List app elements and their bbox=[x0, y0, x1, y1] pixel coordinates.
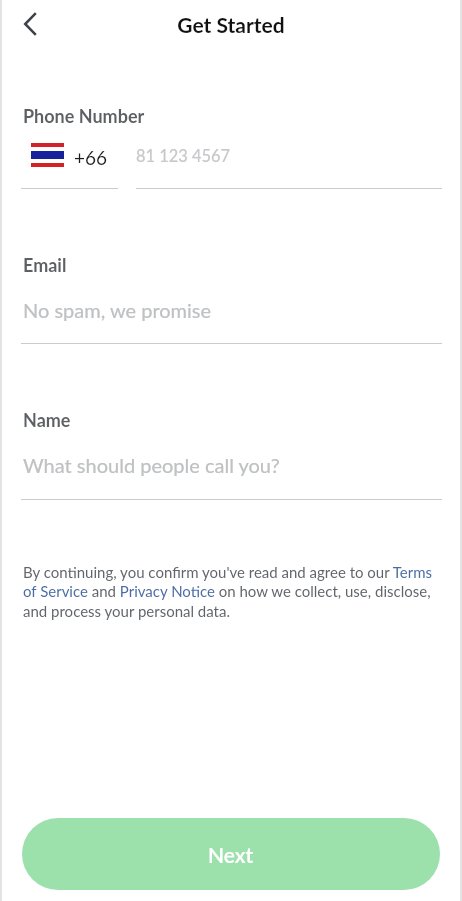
staticText: Name bbox=[23, 409, 71, 431]
staticText: +66 bbox=[74, 146, 108, 169]
staticText: No spam, we promise bbox=[23, 298, 212, 322]
staticText: Get Started bbox=[0, 12, 462, 37]
button[interactable]: Phone number field bbox=[136, 136, 442, 188]
button[interactable]: Select country code bbox=[21, 136, 118, 188]
button[interactable]: Email field bbox=[21, 288, 442, 343]
staticText: What should people call you? bbox=[23, 453, 280, 477]
button[interactable]: Name field bbox=[21, 443, 442, 498]
staticText: Email bbox=[23, 254, 67, 276]
button[interactable]: Next bbox=[22, 818, 440, 890]
staticText: By continuing, you confirm you've read a… bbox=[23, 563, 435, 621]
staticText: Phone Number bbox=[23, 105, 145, 127]
staticText: Next bbox=[208, 842, 254, 867]
staticText: 81 123 4567 bbox=[136, 146, 230, 166]
button[interactable]: Back bbox=[8, 2, 52, 46]
